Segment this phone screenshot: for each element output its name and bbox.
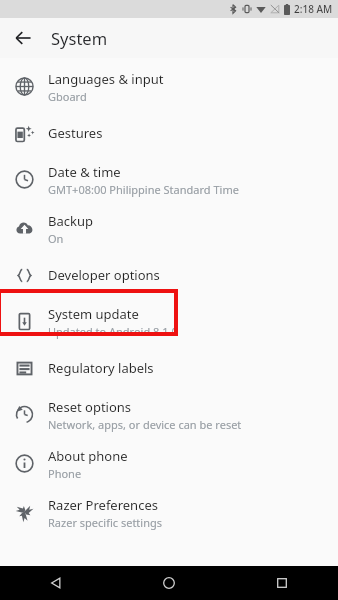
button[interactable]: Developer options [0,253,338,297]
staticText: Razer Preferences [48,496,158,514]
button[interactable]: Back [0,566,112,600]
button[interactable]: Reset options [0,390,338,439]
staticText: System [51,27,108,49]
button[interactable]: Recent apps [225,566,338,600]
button[interactable]: Date & time [0,155,338,204]
staticText: Gestures [48,124,103,142]
button[interactable]: Back [5,20,41,56]
staticText: Languages & input [48,70,164,88]
staticText: Backup [48,212,93,230]
button[interactable]: About phone [0,439,338,488]
staticText: On [48,231,64,246]
button[interactable]: Regulatory labels [0,346,338,390]
staticText: Razer specific settings [48,515,162,530]
staticText: Reset options [48,398,132,416]
staticText: Regulatory labels [48,359,154,377]
staticText: GMT+08:00 Philippine Standard Time [48,182,239,197]
staticText: Developer options [48,266,160,284]
button[interactable]: Razer Preferences [0,488,338,537]
staticText: About phone [48,447,128,465]
button[interactable]: Backup [0,204,338,253]
button[interactable]: Home [112,566,225,600]
staticText: Updated to Android 8.1.0 [48,324,178,339]
button[interactable]: System update [0,297,338,346]
staticText: 2:18 AM [294,2,333,16]
button[interactable]: Gestures [0,111,338,155]
staticText: Date & time [48,163,121,181]
staticText: Phone [48,466,82,481]
staticText: Gboard [48,89,87,104]
staticText: Network, apps, or device can be reset [48,417,242,432]
button[interactable]: Languages & input [0,62,338,111]
staticText: System update [48,305,139,323]
